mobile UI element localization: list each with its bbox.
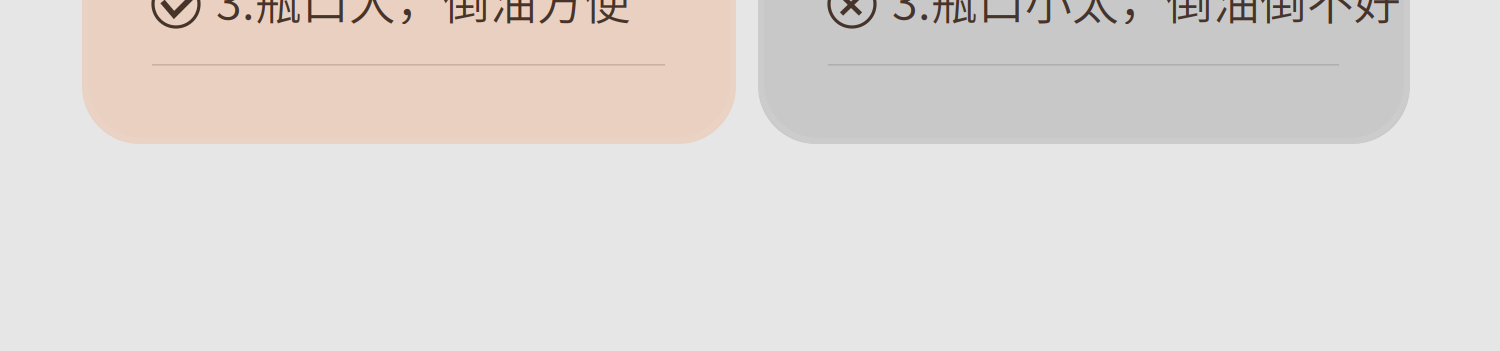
staticText: 3.瓶口大，倒油方便: [216, 0, 631, 33]
staticText: 3.瓶口小太，倒油倒不好: [892, 0, 1401, 33]
button[interactable]: 3.瓶口大，倒油方便: [82, 0, 736, 351]
button[interactable]: 3.瓶口小太，倒油倒不好: [758, 0, 1410, 351]
